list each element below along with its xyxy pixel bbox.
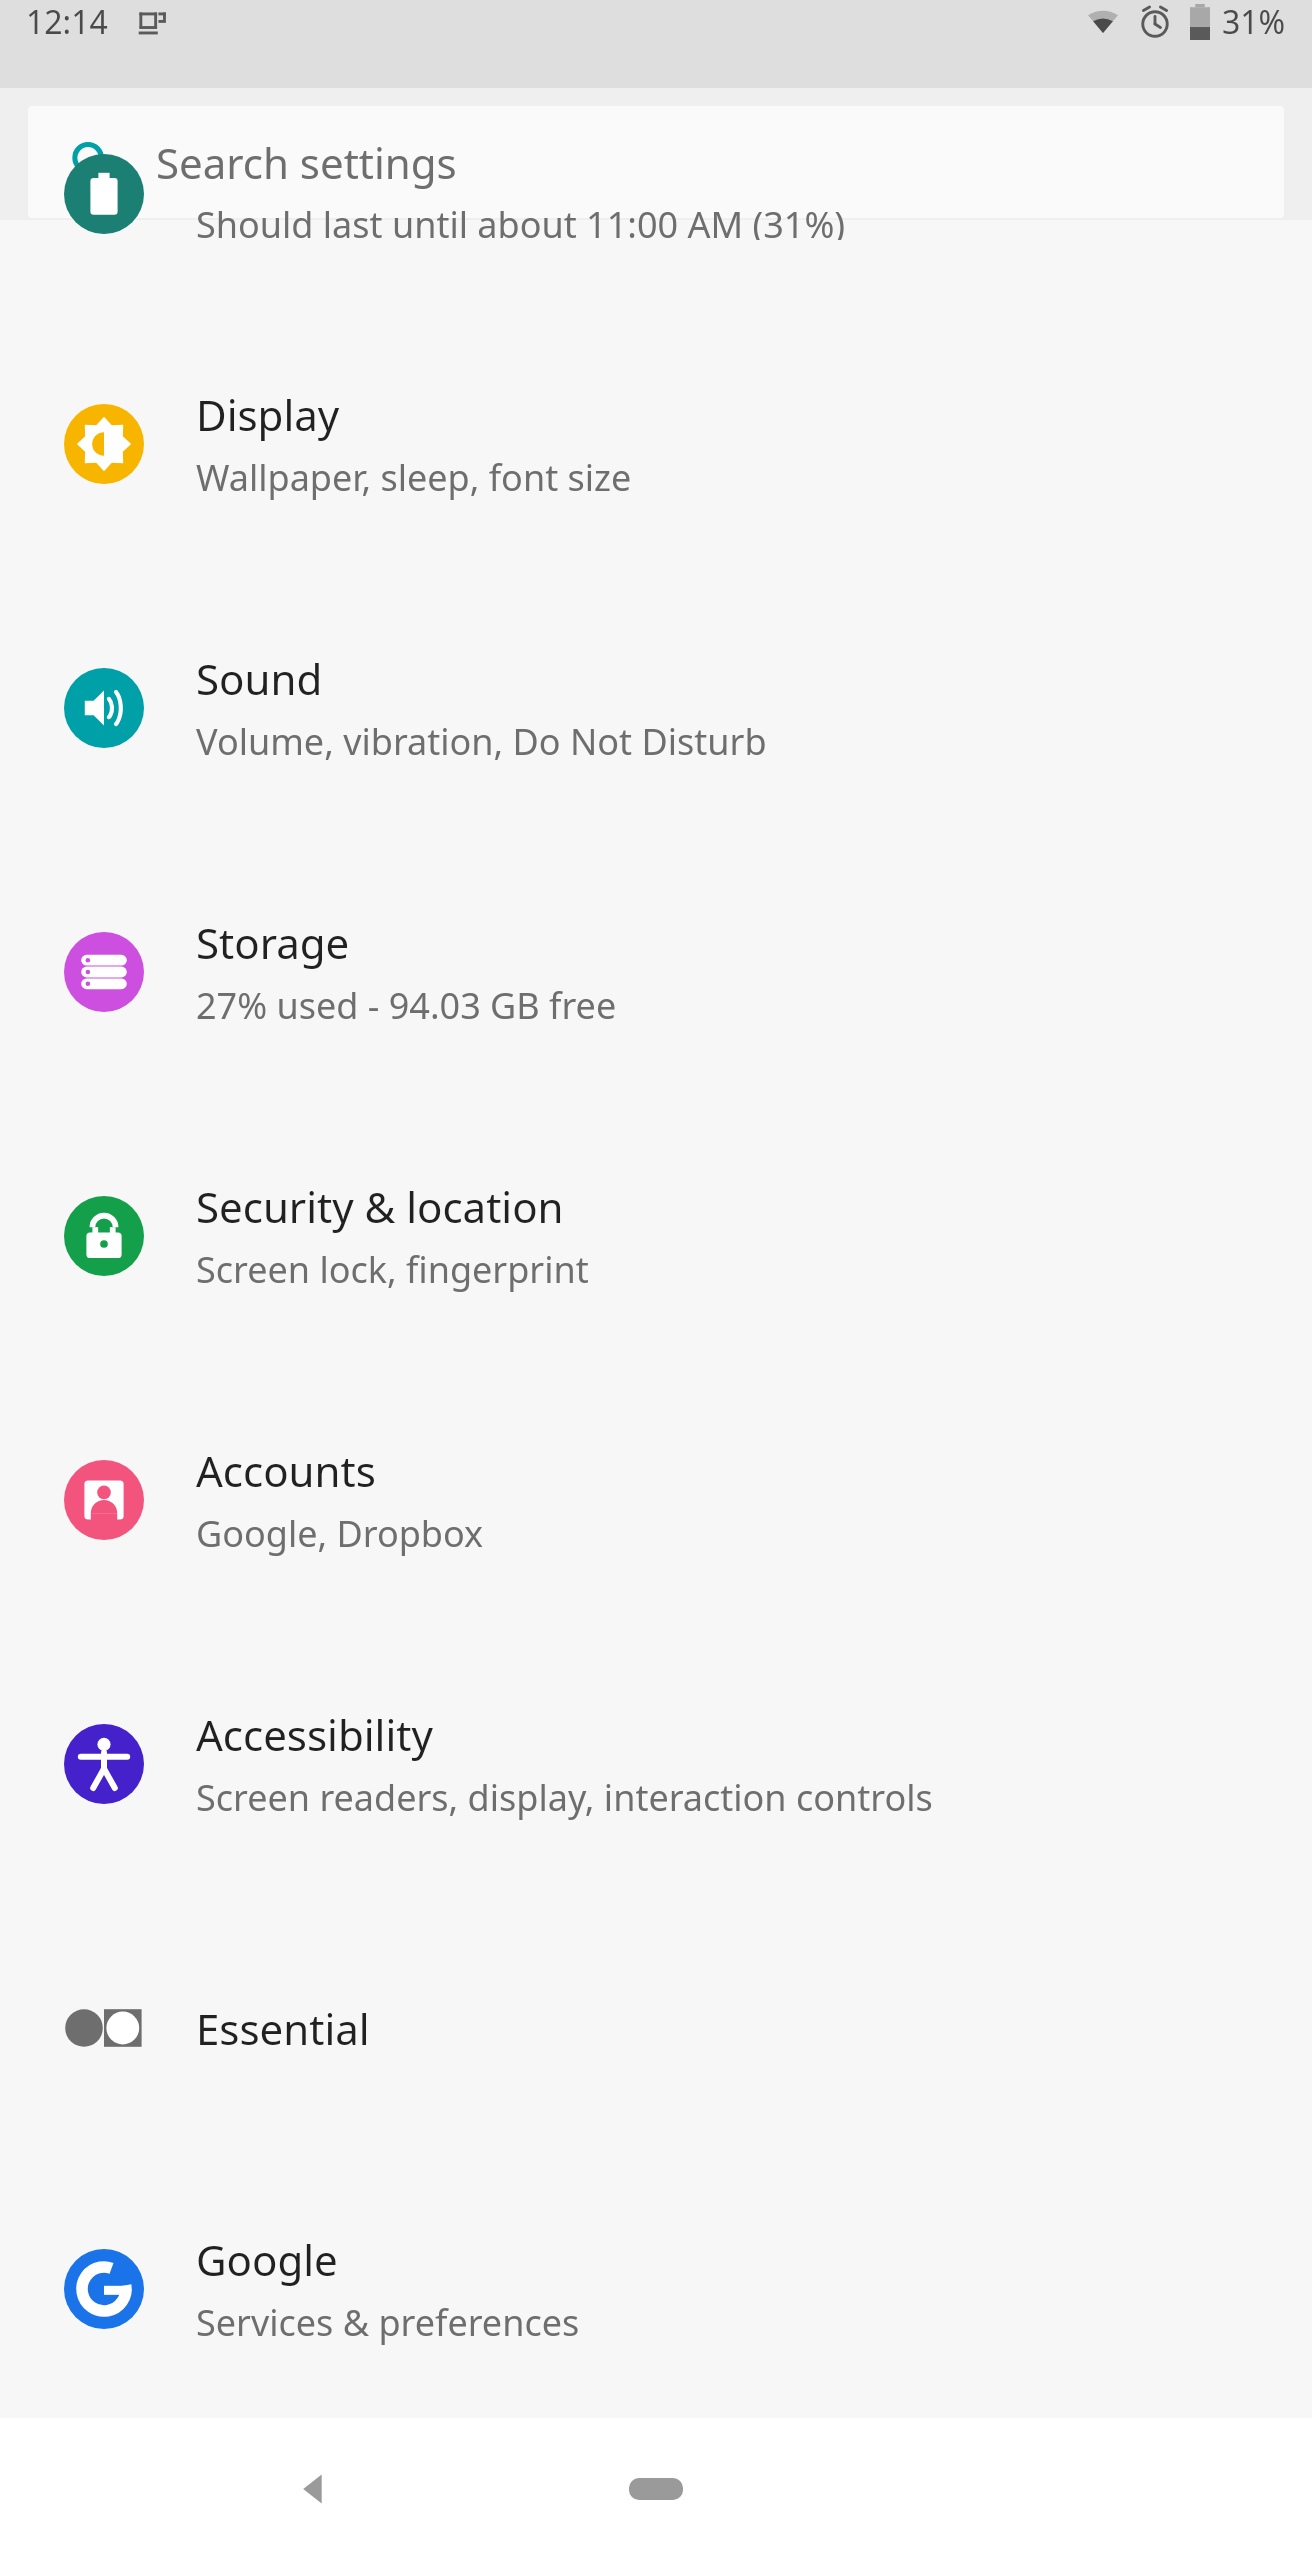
staticText: 31% <box>1222 0 1286 44</box>
staticText: 12:14 <box>26 0 108 44</box>
button[interactable]: Storage <box>0 840 1312 1104</box>
button[interactable]: Should last until about 11:00 AM (31%) <box>0 220 1312 312</box>
button[interactable]: Display <box>0 312 1312 576</box>
staticText: Storage <box>196 914 350 971</box>
button[interactable]: Sound <box>0 576 1312 840</box>
staticText: Screen readers, display, interaction con… <box>196 1773 933 1822</box>
staticText: Accounts <box>196 1442 376 1499</box>
staticText: Wallpaper, sleep, font size <box>196 453 632 502</box>
staticText: Should last until about 11:00 AM (31%) <box>196 200 846 240</box>
staticText: Accessibility <box>196 1706 433 1763</box>
staticText: Google <box>196 2231 338 2288</box>
staticText: Volume, vibration, Do Not Disturb <box>196 717 767 766</box>
staticText: Search settings <box>156 134 457 191</box>
staticText: Screen lock, fingerprint <box>196 1245 589 1294</box>
staticText: Display <box>196 386 340 443</box>
button[interactable]: Back <box>264 2441 360 2537</box>
staticText: Sound <box>196 650 323 707</box>
button[interactable]: Search settings <box>28 106 1284 218</box>
button[interactable]: Accessibility <box>0 1632 1312 1896</box>
staticText: Security & location <box>196 1178 564 1235</box>
staticText: Services & preferences <box>196 2298 580 2347</box>
button[interactable]: Home <box>596 2445 716 2533</box>
staticText: Essential <box>196 2000 370 2057</box>
button[interactable]: Security & location <box>0 1104 1312 1368</box>
staticText: 27% used - 94.03 GB free <box>196 981 617 1030</box>
button[interactable]: Accounts <box>0 1368 1312 1632</box>
button[interactable]: Google <box>0 2160 1312 2418</box>
button[interactable]: Essential <box>0 1896 1312 2160</box>
staticText: Google, Dropbox <box>196 1509 484 1558</box>
